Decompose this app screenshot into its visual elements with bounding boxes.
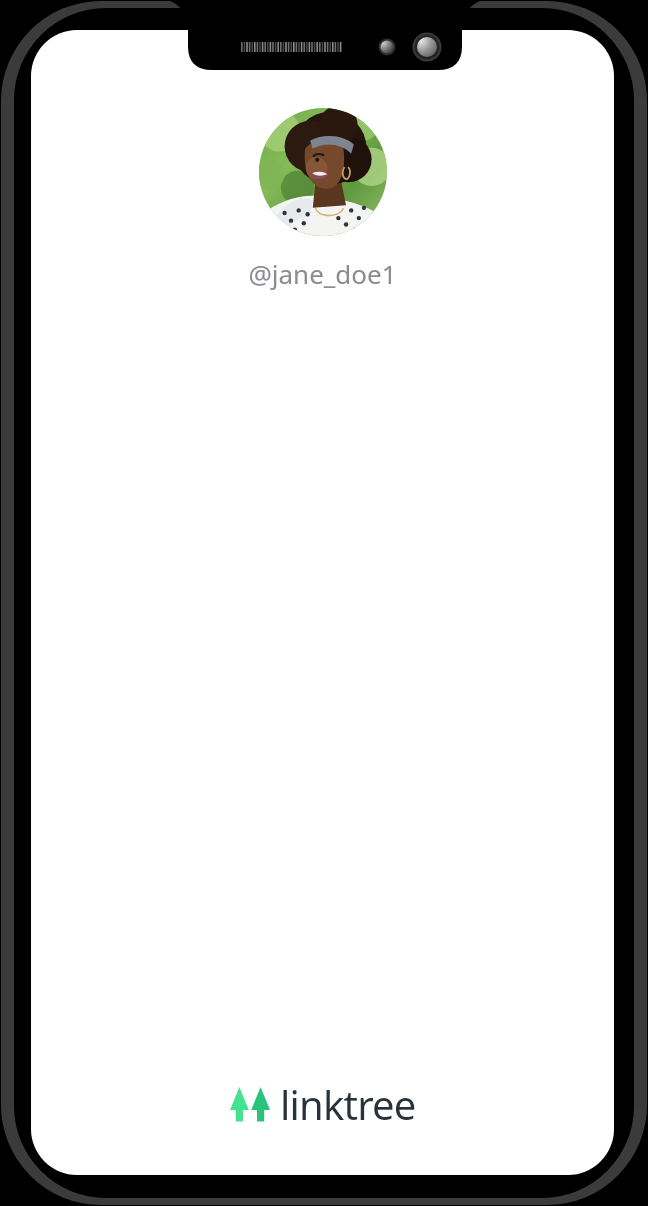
staticText: linktree — [280, 1077, 416, 1131]
staticText: @jane_doe1 — [248, 256, 397, 291]
button[interactable]: Linktree — [224, 1073, 422, 1135]
button[interactable]: Profile photo of jane_doe1 — [259, 108, 387, 236]
